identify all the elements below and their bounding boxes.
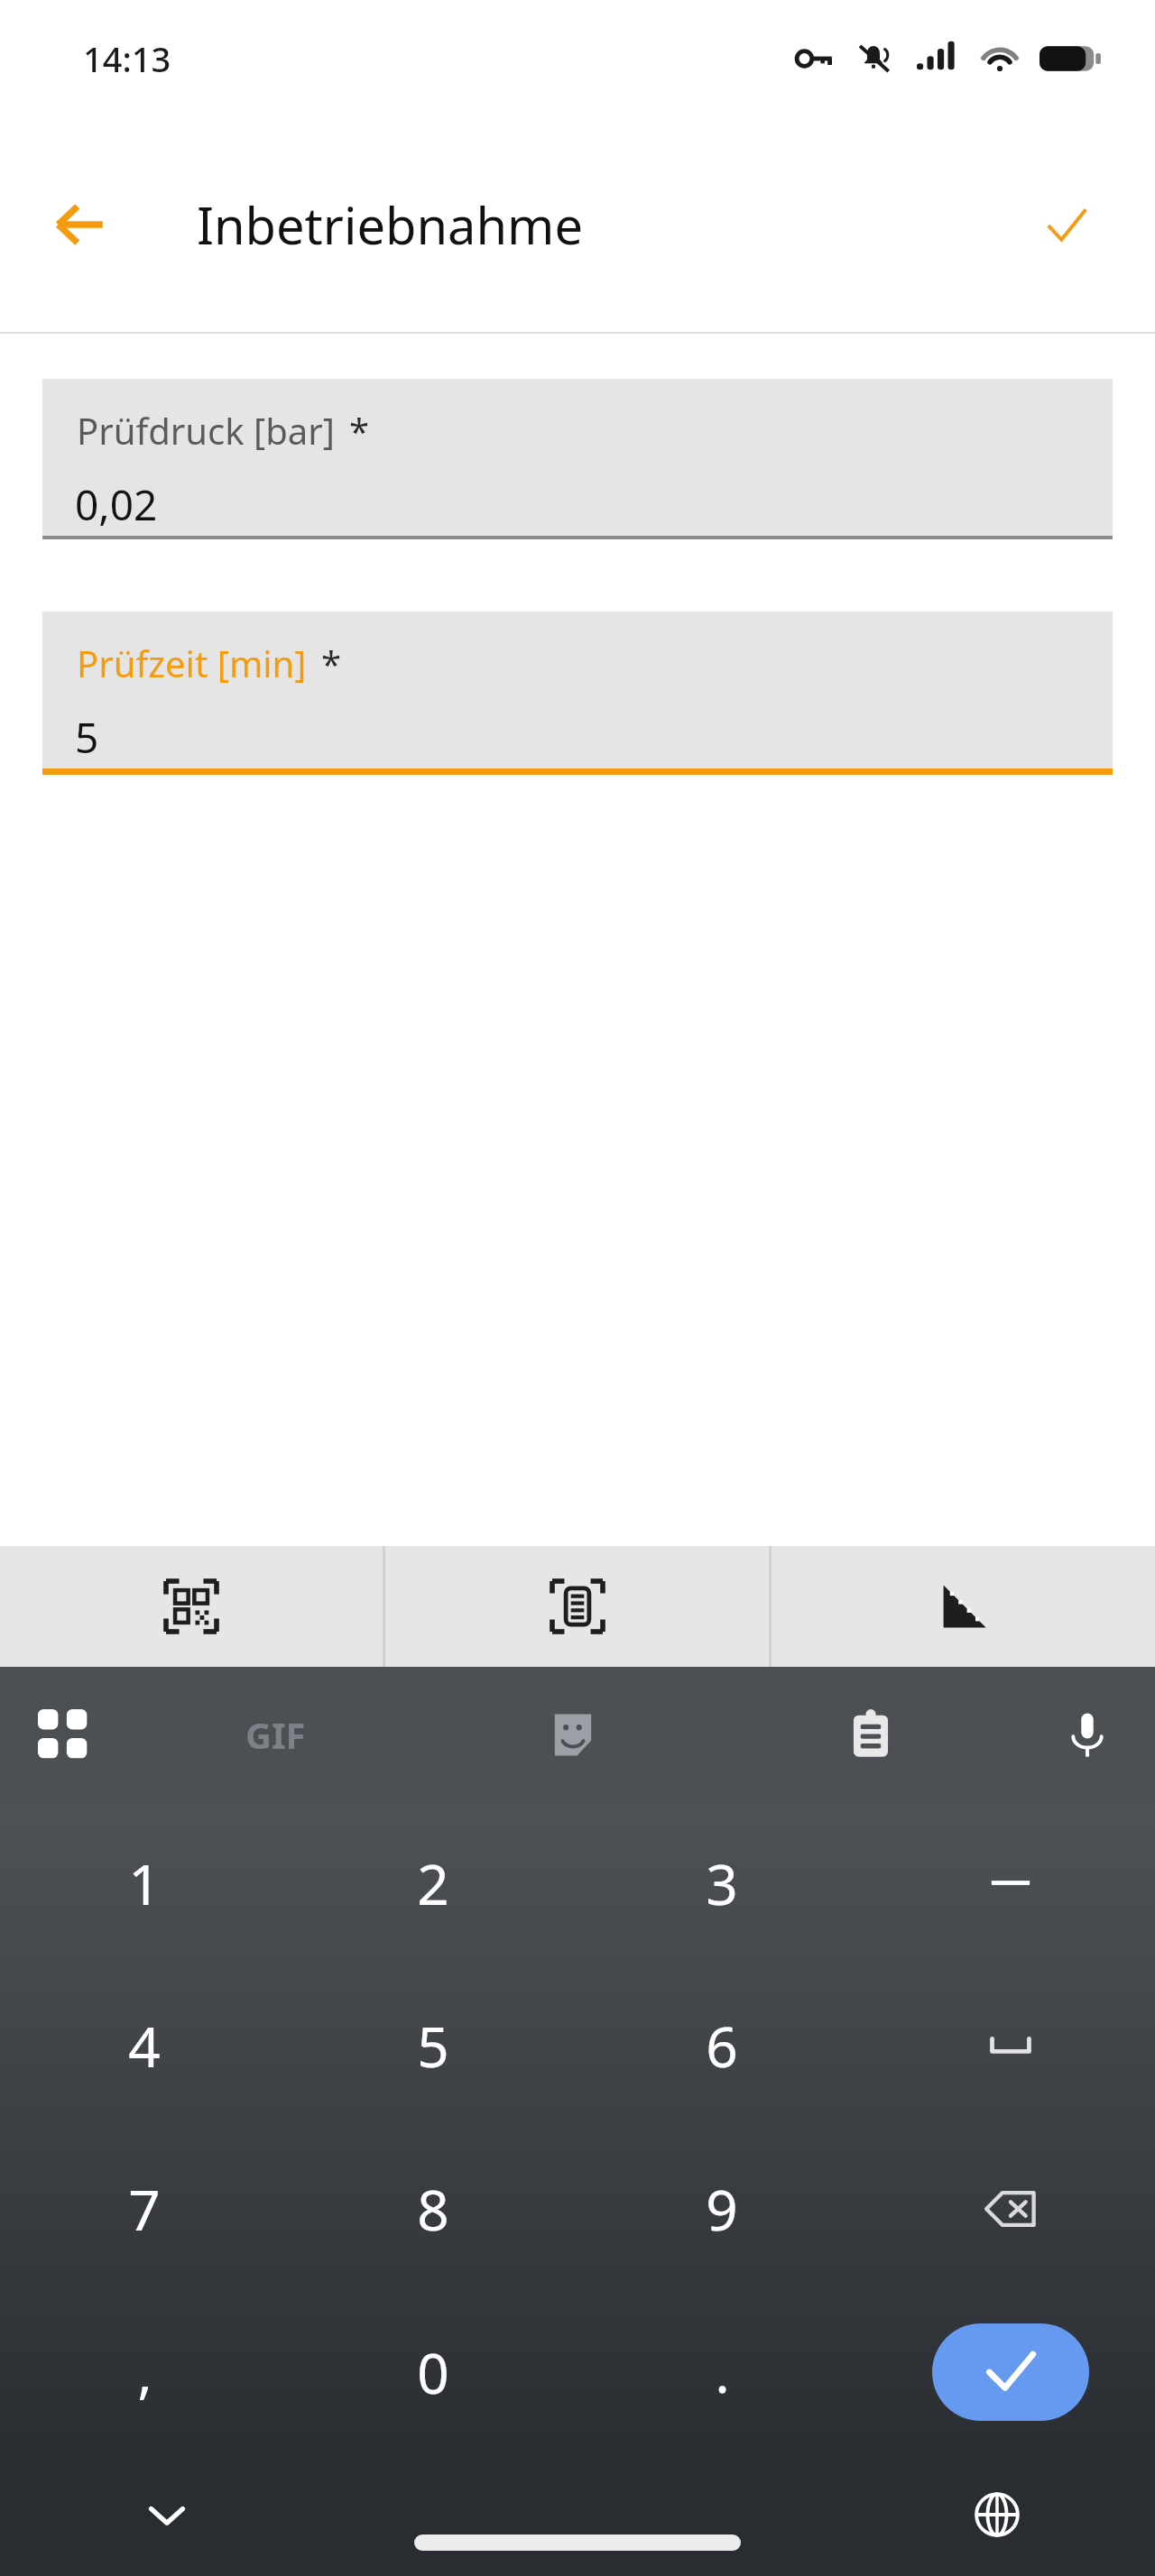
button[interactable]: 4 xyxy=(0,1964,289,2127)
staticText: 6 xyxy=(706,2008,738,2084)
staticText: Inbetriebnahme xyxy=(197,190,584,259)
staticText: . xyxy=(715,2335,730,2409)
button[interactable]: Space xyxy=(866,1964,1155,2127)
button[interactable]: Change language xyxy=(956,2474,1038,2555)
button[interactable]: Measure xyxy=(772,1546,1155,1667)
button[interactable]: Enter xyxy=(932,2323,1089,2421)
button[interactable]: . xyxy=(577,2290,866,2453)
button[interactable]: Toolbar xyxy=(0,1667,126,1802)
staticText: * xyxy=(321,639,342,687)
button[interactable]: Voice input xyxy=(1020,1667,1155,1802)
button[interactable]: 0 xyxy=(289,2290,577,2453)
button[interactable]: Clipboard xyxy=(722,1667,1020,1802)
button[interactable]: 9 xyxy=(577,2127,866,2290)
button[interactable]: Minus xyxy=(866,1802,1155,1964)
button[interactable]: Scan QR code xyxy=(0,1546,383,1667)
button[interactable]: GIF xyxy=(126,1667,424,1802)
button[interactable]: 2 xyxy=(289,1802,577,1964)
button[interactable]: 6 xyxy=(577,1964,866,2127)
staticText: 5 xyxy=(417,2008,449,2084)
button[interactable]: Stickers xyxy=(424,1667,722,1802)
staticText: 4 xyxy=(128,2008,161,2084)
button[interactable]: , xyxy=(0,2290,289,2453)
staticText: GIF xyxy=(245,1710,306,1759)
button[interactable]: 7 xyxy=(0,2127,289,2290)
button[interactable]: Prüfdruck [bar] xyxy=(42,379,1113,536)
staticText: 9 xyxy=(706,2171,738,2247)
staticText: 8 xyxy=(417,2171,449,2247)
staticText: Prüfdruck [bar] xyxy=(77,406,335,455)
staticText: 14:13 xyxy=(83,35,171,82)
button[interactable]: Prüfzeit [min] xyxy=(42,612,1113,768)
button[interactable]: 8 xyxy=(289,2127,577,2290)
staticText: 7 xyxy=(128,2171,161,2247)
staticText: 5 xyxy=(75,709,99,766)
staticText: , xyxy=(137,2335,152,2409)
staticText: * xyxy=(349,406,370,455)
staticText: 0 xyxy=(417,2334,449,2410)
button[interactable]: 5 xyxy=(289,1964,577,2127)
button[interactable]: Back xyxy=(36,181,123,268)
button[interactable]: Backspace xyxy=(866,2127,1155,2290)
button[interactable]: 1 xyxy=(0,1802,289,1964)
staticText: 2 xyxy=(417,1845,449,1921)
button[interactable]: Hide keyboard xyxy=(126,2474,208,2555)
staticText: 0,02 xyxy=(75,476,158,533)
button[interactable]: Save xyxy=(1023,181,1110,268)
staticText: Prüfzeit [min] xyxy=(77,639,307,687)
staticText: 1 xyxy=(128,1845,161,1921)
button[interactable]: Scan barcode xyxy=(385,1546,769,1667)
button[interactable]: 3 xyxy=(577,1802,866,1964)
staticText: 3 xyxy=(706,1845,738,1921)
